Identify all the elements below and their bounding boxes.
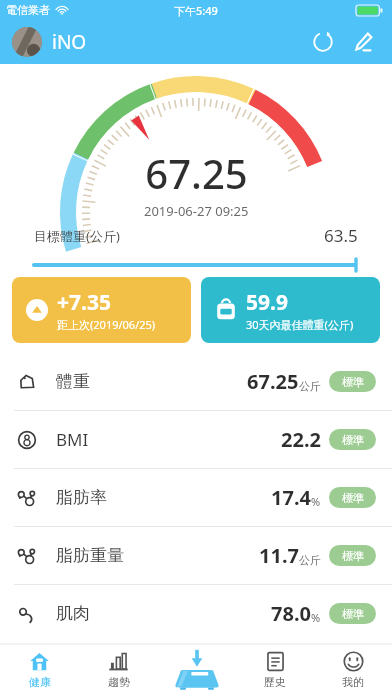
staticText: 63.5 xyxy=(324,224,358,247)
button[interactable]: +7.35 xyxy=(12,277,191,343)
staticText: +7.35 xyxy=(57,288,111,317)
button[interactable]: Measure xyxy=(158,644,236,696)
staticText: % xyxy=(311,494,321,509)
staticText: BMI xyxy=(56,428,89,451)
staticText: 電信業者 xyxy=(6,3,50,17)
staticText: 標準 xyxy=(342,375,364,389)
button[interactable]: 歷史 xyxy=(236,644,314,696)
button[interactable]: Sync xyxy=(306,25,340,59)
button[interactable]: 肌肉 xyxy=(0,585,392,642)
staticText: 目標體重(公斤) xyxy=(34,227,120,245)
staticText: 78.0 xyxy=(271,600,311,627)
staticText: 肌肉 xyxy=(56,603,90,624)
button[interactable]: 脂肪率 xyxy=(0,469,392,526)
staticText: 30天內最佳體重(公斤) xyxy=(246,317,354,332)
staticText: 11.7 xyxy=(259,542,299,569)
button[interactable]: 健康 xyxy=(0,644,79,696)
staticText: 標準 xyxy=(342,607,364,621)
button[interactable] xyxy=(34,259,358,271)
staticText: 59.9 xyxy=(246,288,288,317)
staticText: 17.4 xyxy=(271,484,311,511)
button[interactable]: 趨勢 xyxy=(79,644,158,696)
button[interactable]: Edit xyxy=(346,25,380,59)
staticText: 67.25 xyxy=(145,146,248,200)
staticText: 距上次(2019/06/25) xyxy=(57,317,156,332)
staticText: 我的 xyxy=(342,675,364,689)
staticText: 脂肪率 xyxy=(56,487,107,508)
button[interactable]: 體重 xyxy=(0,353,392,410)
staticText: 標準 xyxy=(342,549,364,563)
button[interactable]: 59.9 xyxy=(201,277,380,343)
button[interactable]: 我的 xyxy=(314,644,392,696)
staticText: 體重 xyxy=(56,371,90,392)
staticText: 67.25 xyxy=(247,368,299,395)
staticText: % xyxy=(311,610,321,625)
staticText: 標準 xyxy=(342,491,364,505)
staticText: 2019-06-27 09:25 xyxy=(144,202,249,220)
staticText: iNO xyxy=(52,29,87,55)
staticText: 脂肪重量 xyxy=(56,545,124,566)
staticText: 趨勢 xyxy=(108,675,130,689)
staticText: 下午5:49 xyxy=(174,3,218,18)
staticText: 標準 xyxy=(342,433,364,447)
staticText: 公斤 xyxy=(299,553,321,567)
staticText: 公斤 xyxy=(299,379,321,393)
button[interactable]: 脂肪重量 xyxy=(0,527,392,584)
button[interactable]: BMI xyxy=(0,411,392,468)
staticText: 22.2 xyxy=(281,426,321,453)
staticText: 歷史 xyxy=(264,675,286,689)
staticText: 健康 xyxy=(29,675,51,689)
button[interactable]: Profile xyxy=(12,27,42,57)
